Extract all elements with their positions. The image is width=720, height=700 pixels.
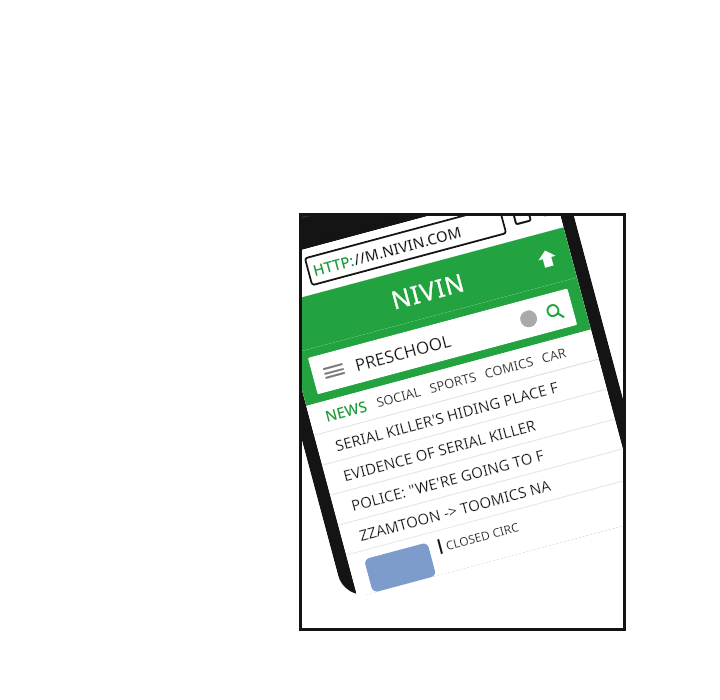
button[interactable]: POLICE: "WE'RE GOING TO F bbox=[330, 419, 623, 525]
button[interactable]: Scroll to top bbox=[535, 246, 559, 271]
button[interactable]: HTTP: bbox=[304, 216, 507, 286]
staticText: SERIAL KILLER'S HIDING PLACE F bbox=[333, 376, 560, 455]
button[interactable]: Tabs bbox=[505, 216, 537, 231]
button[interactable]: SOCIAL bbox=[374, 382, 423, 411]
button[interactable]: CAR bbox=[539, 343, 568, 367]
button[interactable]: Menu bbox=[322, 361, 346, 381]
button[interactable]: EVIDENCE OF SERIAL KILLER bbox=[322, 389, 615, 495]
button[interactable]: Menu bbox=[308, 288, 577, 394]
button[interactable]: ZZAMTOON -> TOOMICS NA bbox=[338, 449, 623, 555]
button[interactable]: COMICS bbox=[482, 352, 535, 382]
staticText: //M.NIVIN.COM bbox=[351, 221, 464, 269]
staticText: PRESCHOOL bbox=[352, 329, 454, 376]
staticText: HTTP: bbox=[311, 250, 356, 280]
button[interactable]: NIVIN bbox=[387, 264, 468, 317]
button[interactable]: SERIAL KILLER'S HIDING PLACE F bbox=[314, 359, 607, 465]
staticText: POLICE: "WE'RE GOING TO F bbox=[349, 444, 546, 515]
staticText: ZZAMTOON -> TOOMICS NA bbox=[357, 475, 553, 545]
button[interactable]: NEWS bbox=[323, 395, 369, 426]
button[interactable]: SPORTS bbox=[427, 367, 478, 397]
staticText: EVIDENCE OF SERIAL KILLER bbox=[341, 414, 538, 485]
button[interactable]: Home bbox=[302, 260, 308, 292]
staticText: CLOSED CIRC bbox=[444, 518, 520, 553]
button[interactable]: CLOSED CIRC bbox=[346, 479, 623, 597]
button[interactable]: More options bbox=[532, 216, 554, 223]
button[interactable]: Search bbox=[544, 301, 565, 322]
